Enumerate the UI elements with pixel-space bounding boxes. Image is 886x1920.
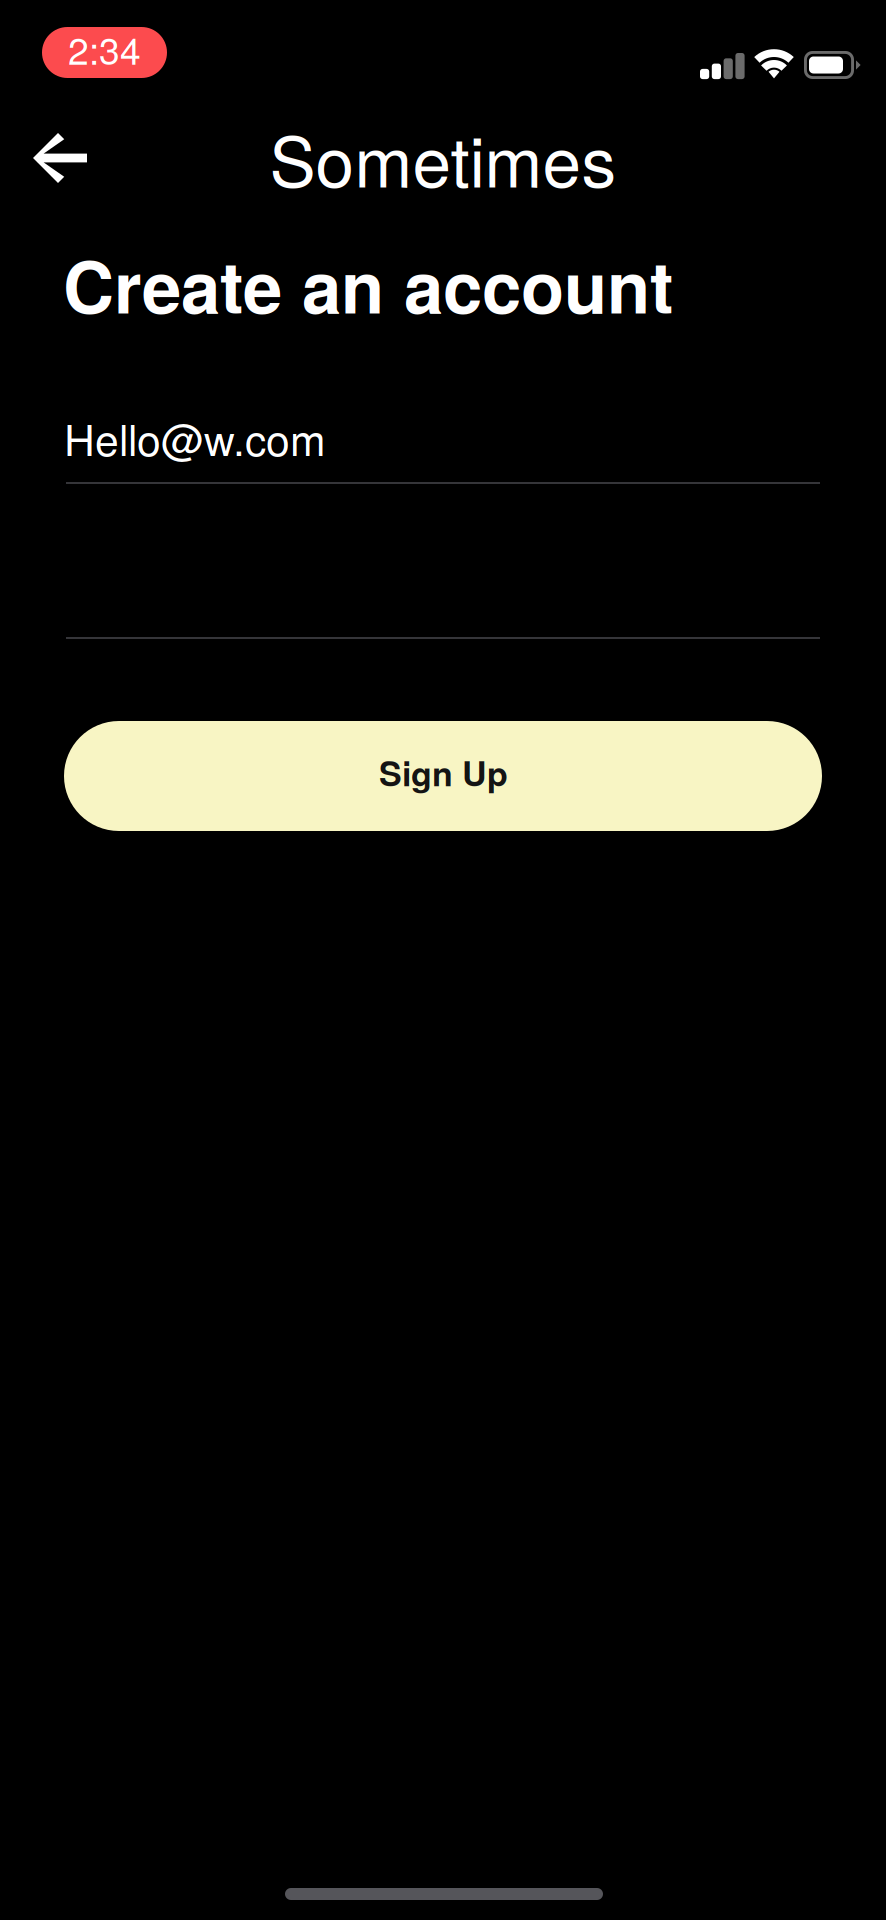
button[interactable]: Sign Up <box>64 721 822 831</box>
button[interactable]: Hello@w.com <box>66 394 820 484</box>
staticText: Sometimes <box>269 108 616 207</box>
staticText: Hello@w.com <box>64 407 326 468</box>
button[interactable]: Password <box>66 549 820 639</box>
staticText: Create an account <box>63 234 674 335</box>
staticText: 2:34 <box>68 22 141 75</box>
button[interactable]: Back <box>0 95 110 195</box>
staticText: Sign Up <box>379 748 508 797</box>
